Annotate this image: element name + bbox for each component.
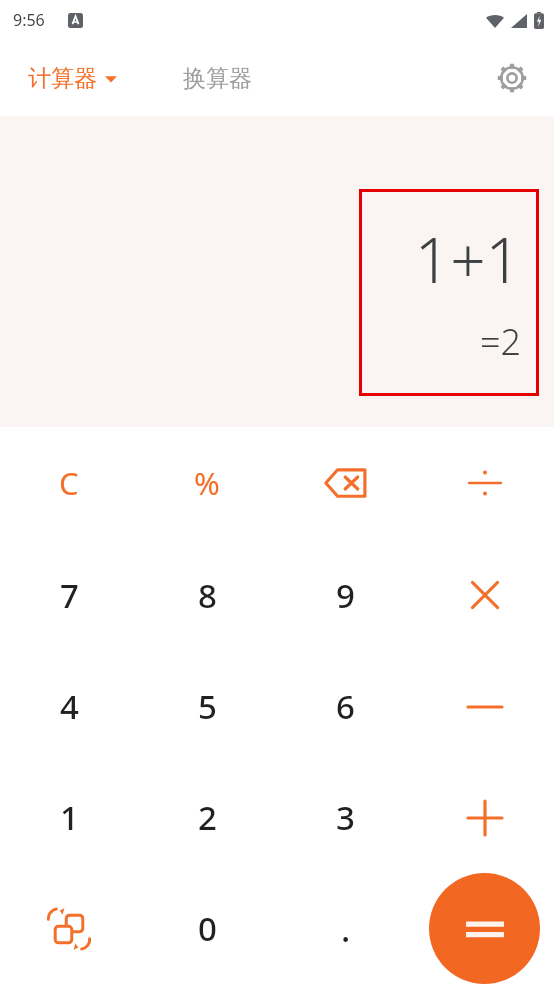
staticText: . [341,906,351,952]
button[interactable]: Minus [415,651,554,762]
button[interactable]: Convert [0,873,138,984]
staticText: 3 [336,795,355,840]
staticText: 5 [198,684,217,729]
button[interactable]: Plus [415,762,554,873]
staticText: 8 [198,573,217,618]
button[interactable]: Percent [138,427,276,539]
button[interactable]: 4 [0,651,138,762]
staticText: 7 [60,573,79,618]
button[interactable]: 0 [138,873,276,984]
staticText: 2 [198,795,217,840]
staticText: 9 [336,573,355,618]
button[interactable]: 7 [0,539,138,651]
button[interactable]: 1 [0,762,138,873]
staticText: 1 [60,795,79,840]
staticText: 换算器 [183,64,252,93]
button[interactable]: Backspace [276,427,415,539]
button[interactable]: Settings [490,56,534,100]
staticText: =2 [479,317,521,366]
staticText: 6 [336,684,355,729]
button[interactable]: 计算器 [20,58,125,99]
button[interactable]: 5 [138,651,276,762]
button[interactable]: 8 [138,539,276,651]
button[interactable]: Decimal point [276,873,415,984]
staticText: 计算器 [28,64,97,93]
button[interactable]: Clear [0,427,138,539]
button[interactable]: Equals [429,873,540,984]
staticText: 9:56 [13,9,45,31]
button[interactable]: Multiply [415,539,554,651]
button[interactable]: Divide [415,427,554,539]
staticText: 0 [198,906,217,951]
staticText: 4 [60,684,79,729]
button[interactable]: 2 [138,762,276,873]
button[interactable]: 换算器 [175,58,260,99]
button[interactable]: 9 [276,539,415,651]
staticText: 1+1 [414,217,521,301]
staticText: % [194,462,220,504]
staticText: C [59,462,79,504]
button[interactable]: 6 [276,651,415,762]
button[interactable]: 3 [276,762,415,873]
